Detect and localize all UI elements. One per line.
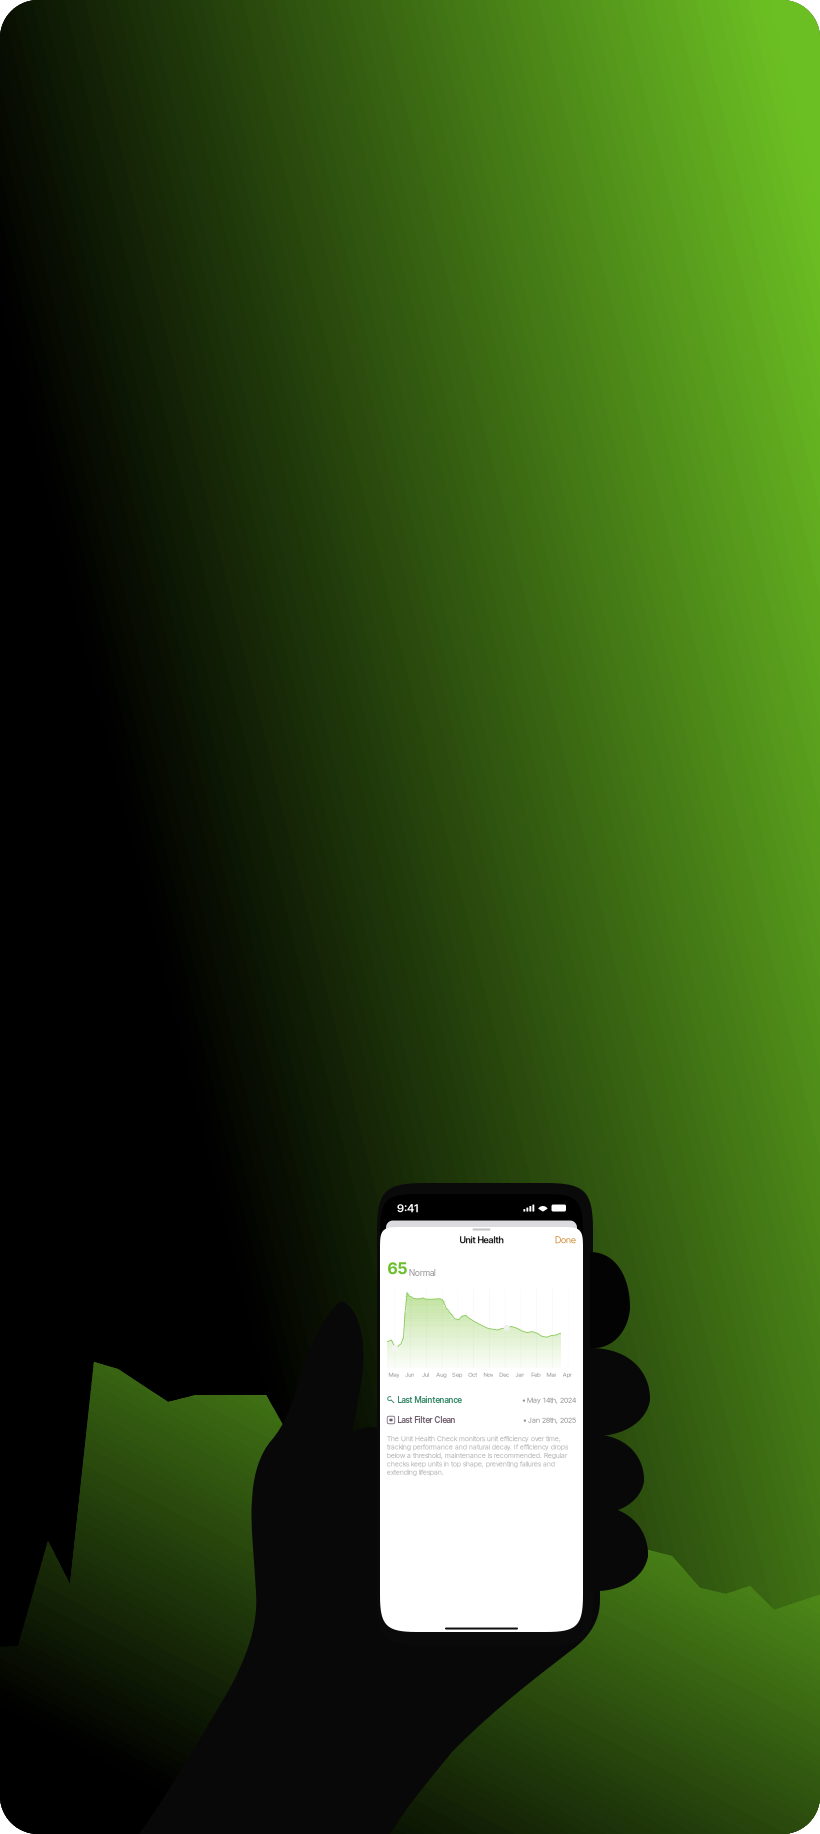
- staticText: Normal: [409, 1268, 436, 1278]
- staticText: • May 14th, 2024: [522, 1396, 576, 1404]
- staticText: Done: [555, 1234, 576, 1245]
- staticText: Unit Health: [459, 1234, 503, 1245]
- staticText: Apr: [563, 1371, 572, 1378]
- staticText: Sep: [452, 1371, 462, 1378]
- staticText: Mar: [546, 1371, 556, 1378]
- button[interactable]: Last Maintenance: [387, 1394, 576, 1406]
- staticText: Feb: [531, 1371, 540, 1378]
- staticText: Dec: [499, 1371, 509, 1378]
- staticText: Aug: [436, 1371, 446, 1378]
- staticText: Last Maintenance: [398, 1395, 462, 1405]
- staticText: Jun: [405, 1371, 414, 1378]
- staticText: May: [388, 1371, 399, 1378]
- staticText: Oct: [468, 1371, 477, 1378]
- staticText: Jul: [422, 1371, 429, 1378]
- staticText: 9:41: [397, 1201, 418, 1215]
- staticText: The Unit Health Check monitors unit effi…: [387, 1434, 568, 1476]
- staticText: Jan: [515, 1371, 524, 1378]
- staticText: Nov: [483, 1371, 493, 1378]
- staticText: • Jan 28th, 2025: [523, 1416, 576, 1424]
- button[interactable]: Done: [546, 1234, 576, 1245]
- button[interactable]: Last Filter Clean: [387, 1414, 576, 1426]
- staticText: Last Filter Clean: [398, 1415, 456, 1425]
- staticText: 65: [388, 1259, 408, 1278]
